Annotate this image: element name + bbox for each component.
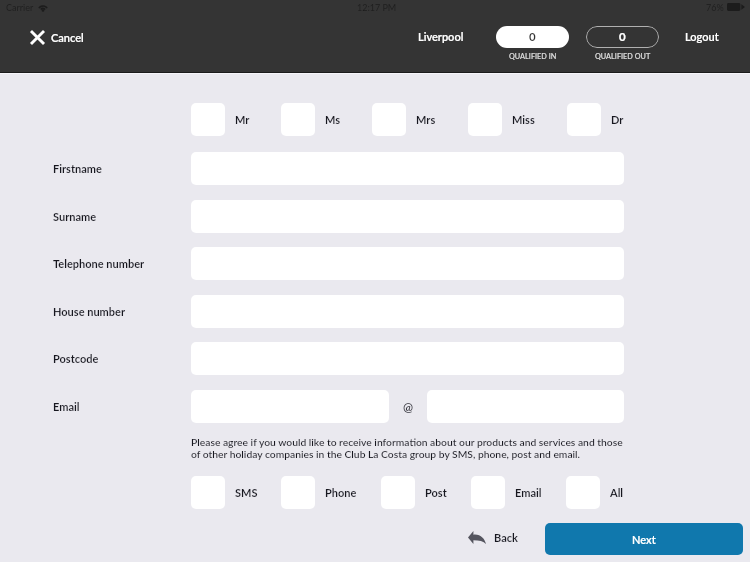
staticText: Mrs — [416, 113, 436, 126]
staticText: Surname — [53, 210, 97, 223]
staticText: Logout — [685, 30, 719, 43]
staticText: Carrier — [6, 2, 34, 13]
button[interactable]: All — [566, 476, 624, 509]
staticText: Liverpool — [418, 30, 464, 43]
staticText: QUALIFIED IN — [509, 52, 557, 61]
button[interactable]: 0 — [496, 26, 569, 48]
button[interactable]: SMS — [191, 476, 258, 509]
staticText: Email — [515, 486, 542, 499]
staticText: Phone — [325, 486, 357, 499]
staticText: Dr — [611, 113, 624, 126]
staticText: 76% — [706, 2, 724, 13]
button[interactable]: Cancel — [24, 23, 96, 52]
staticText: QUALIFIED OUT — [595, 52, 651, 61]
staticText: 12:17 PM — [357, 2, 397, 13]
button[interactable]: 0 — [586, 26, 659, 48]
button[interactable]: Back — [460, 524, 526, 551]
staticText: 0 — [529, 30, 536, 44]
button[interactable]: Logout — [685, 30, 719, 43]
button[interactable]: Email — [471, 476, 542, 509]
staticText: Miss — [512, 113, 535, 126]
staticText: Cancel — [51, 31, 84, 44]
staticText: Back — [494, 531, 518, 544]
staticText: Postcode — [53, 352, 99, 365]
button[interactable]: Miss — [468, 103, 535, 136]
button[interactable]: Ms — [281, 103, 341, 136]
button[interactable]: Liverpool — [418, 30, 464, 43]
staticText: Next — [632, 533, 656, 546]
staticText: Post — [425, 486, 447, 499]
button[interactable]: Phone — [281, 476, 357, 509]
other: Back — [468, 531, 486, 544]
button[interactable]: Next — [545, 523, 743, 555]
staticText: Firstname — [53, 162, 102, 175]
button[interactable]: Mr — [191, 103, 250, 136]
button[interactable]: Dr — [567, 103, 624, 136]
staticText: Mr — [235, 113, 250, 126]
staticText: Please agree if you would like to receiv… — [191, 436, 631, 460]
staticText: @ — [403, 400, 414, 414]
staticText: Email — [53, 400, 80, 413]
staticText: Ms — [325, 113, 341, 126]
staticText: SMS — [235, 486, 258, 499]
button[interactable]: Post — [381, 476, 447, 509]
staticText: 0 — [619, 30, 626, 44]
staticText: Telephone number — [53, 257, 145, 270]
staticText: All — [610, 486, 624, 499]
button[interactable]: Mrs — [372, 103, 436, 136]
staticText: House number — [53, 305, 126, 318]
